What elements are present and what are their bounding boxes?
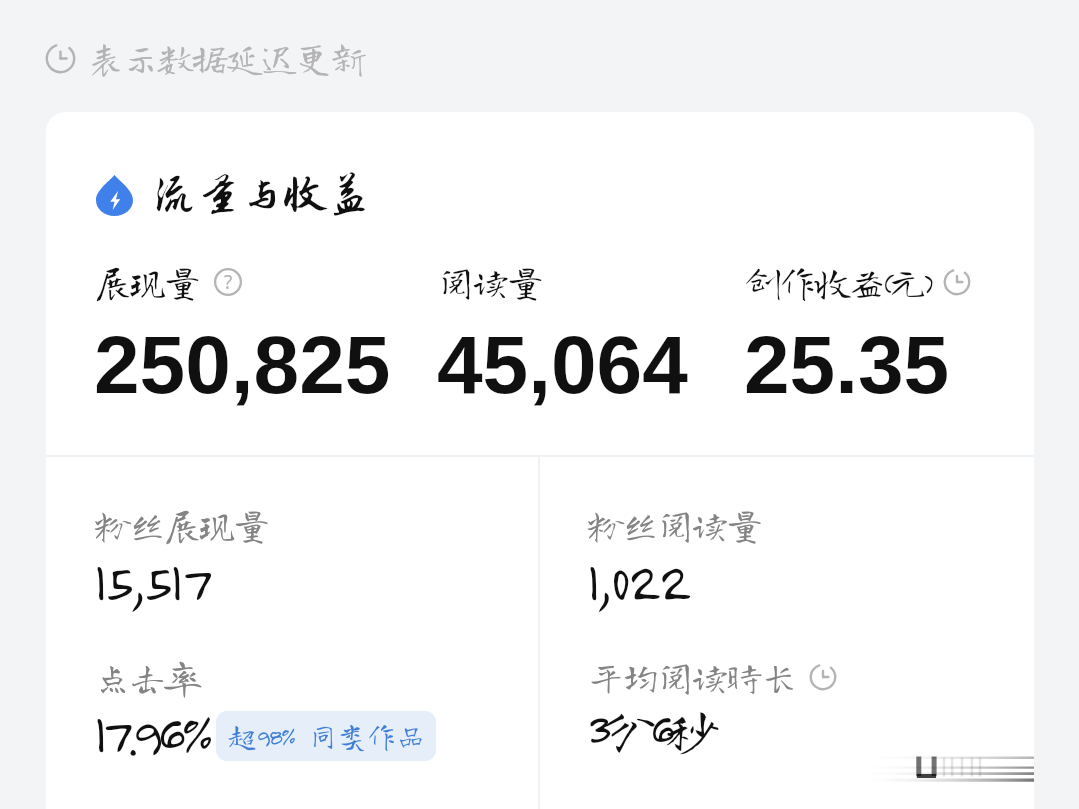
staticText: 阅读量 [437, 263, 542, 301]
staticText: 45,064 [437, 319, 688, 411]
staticText: 超98% 同类作品 [227, 721, 425, 751]
staticText: 流量与收益 [153, 171, 372, 219]
staticText: 平均阅读时长 [587, 658, 796, 696]
staticText: 250,825 [94, 319, 391, 411]
staticText: 创作收益(元) [744, 263, 930, 301]
staticText: ? [224, 269, 233, 295]
staticText: 粉丝阅读量 [587, 506, 761, 544]
staticText: 展现量 [94, 263, 199, 301]
button[interactable]: 超98% 同类作品 [216, 711, 436, 761]
staticText: 15,517 [94, 549, 210, 613]
staticText: 表示数据延迟更新 [87, 39, 365, 77]
staticText: 1,022 [587, 549, 690, 613]
staticText: 3分6秒 [587, 701, 714, 757]
staticText: 25.35 [744, 319, 950, 411]
staticText: 粉丝展现量 [94, 506, 268, 544]
staticText: 17.96% [94, 701, 209, 765]
staticText: 点击率 [94, 658, 199, 696]
button[interactable]: 表示数据延迟更新 [45, 39, 365, 77]
